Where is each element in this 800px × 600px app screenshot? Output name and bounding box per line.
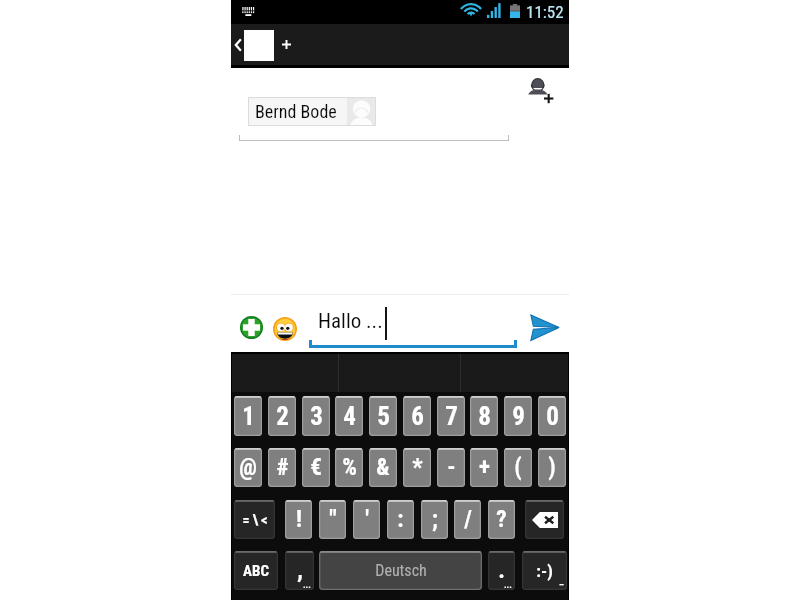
staticText: 8	[478, 402, 491, 431]
button[interactable]: +	[470, 448, 498, 487]
staticText: –	[559, 580, 564, 590]
button[interactable]: Emoji	[273, 317, 297, 341]
button[interactable]: %	[335, 448, 363, 487]
button[interactable]: Add contact	[523, 72, 557, 106]
button[interactable]: #	[268, 448, 296, 487]
staticText: ...	[303, 580, 311, 590]
button[interactable]: ABC	[234, 551, 278, 590]
staticText: = \ <	[242, 512, 268, 528]
button[interactable]: ?	[488, 500, 515, 539]
staticText: +	[479, 454, 490, 481]
staticText: ABC	[243, 562, 269, 580]
staticText: ;	[432, 506, 438, 533]
button[interactable]: '	[353, 500, 380, 539]
staticText: 3	[310, 402, 323, 431]
staticText: ...	[504, 580, 512, 590]
button[interactable]: Navigate up	[235, 24, 274, 65]
button[interactable]: )	[538, 448, 566, 487]
button[interactable]: /	[454, 500, 481, 539]
staticText: 1	[242, 402, 255, 431]
button[interactable]: 5	[369, 396, 397, 436]
staticText: Deutsch	[375, 561, 427, 580]
staticText: Bernd Bode	[255, 101, 337, 122]
staticText: 11:52	[526, 2, 564, 22]
staticText: ,	[297, 557, 303, 584]
button[interactable]: 4	[335, 396, 363, 436]
staticText: )	[548, 454, 556, 481]
staticText: *	[412, 454, 423, 481]
button[interactable]: 8	[470, 396, 498, 436]
button[interactable]: 9	[504, 396, 532, 436]
button[interactable]: :-)	[522, 551, 567, 590]
button[interactable]: 6	[403, 396, 431, 436]
staticText: 2	[276, 402, 289, 431]
button[interactable]: .	[488, 551, 515, 590]
button[interactable]: €	[302, 448, 330, 487]
button[interactable]: ,	[285, 551, 314, 590]
staticText: "	[329, 506, 337, 533]
staticText: '	[365, 506, 369, 533]
button[interactable]: 1	[234, 396, 262, 436]
button[interactable]: = \ <	[234, 500, 275, 539]
staticText: 4	[343, 402, 356, 431]
button[interactable]: Deutsch	[319, 551, 482, 590]
button[interactable]: @	[234, 448, 262, 487]
button[interactable]	[525, 500, 564, 539]
staticText: #	[276, 454, 289, 481]
staticText: 0	[546, 402, 559, 431]
staticText: :-)	[536, 561, 553, 581]
staticText: 7	[445, 402, 458, 431]
button[interactable]: Attach	[240, 316, 263, 339]
staticText: 6	[411, 402, 424, 431]
button[interactable]: Bernd Bode	[248, 97, 376, 126]
staticText: /	[464, 506, 472, 533]
button[interactable]: 7	[437, 396, 465, 436]
staticText: €	[310, 454, 322, 481]
button[interactable]: "	[319, 500, 346, 539]
button[interactable]: New message	[275, 24, 297, 65]
staticText: (	[514, 454, 522, 481]
staticText: !	[296, 506, 302, 533]
button[interactable]: 0	[538, 396, 566, 436]
button[interactable]: *	[403, 448, 431, 487]
staticText: &	[376, 454, 390, 481]
staticText: :	[397, 506, 404, 533]
staticText: .	[498, 557, 505, 584]
staticText: 9	[512, 402, 525, 431]
staticText: 5	[377, 402, 390, 431]
button[interactable]: 2	[268, 396, 296, 436]
button[interactable]: Send	[529, 313, 560, 342]
staticText: ?	[496, 506, 507, 533]
button[interactable]: (	[504, 448, 532, 487]
button[interactable]: :	[387, 500, 414, 539]
staticText: Hallo ...	[318, 309, 383, 334]
button[interactable]: !	[285, 500, 312, 539]
button[interactable]: -	[437, 448, 465, 487]
button[interactable]: 3	[302, 396, 330, 436]
staticText: @	[239, 454, 257, 481]
staticText: -	[447, 454, 456, 481]
button[interactable]: ;	[421, 500, 448, 539]
button[interactable]: &	[369, 448, 397, 487]
staticText: %	[342, 454, 357, 481]
